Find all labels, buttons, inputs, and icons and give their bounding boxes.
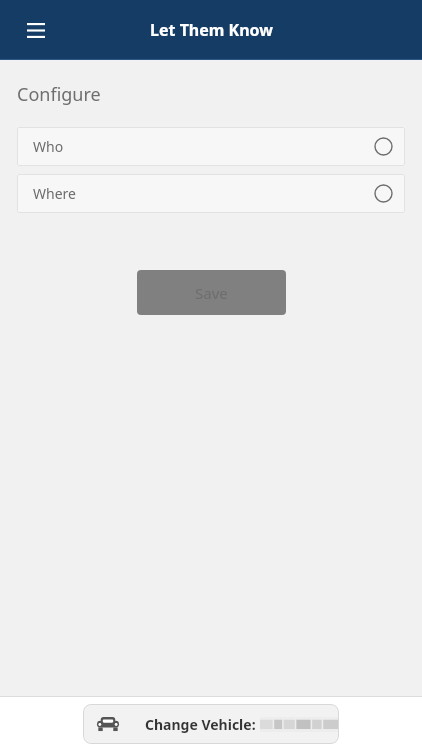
button[interactable]: Open navigation menu (16, 10, 56, 50)
staticText: Save (195, 283, 228, 303)
button[interactable]: Who (17, 127, 405, 166)
staticText: Where (33, 184, 76, 203)
staticText: Let Them Know (150, 19, 273, 41)
staticText: Change Vehicle: (145, 715, 256, 734)
button[interactable]: Where (17, 174, 405, 213)
button[interactable]: Change Vehicle: (83, 704, 339, 744)
button[interactable]: Save (137, 270, 286, 315)
staticText: Configure (17, 82, 101, 107)
staticText: Who (33, 137, 64, 156)
